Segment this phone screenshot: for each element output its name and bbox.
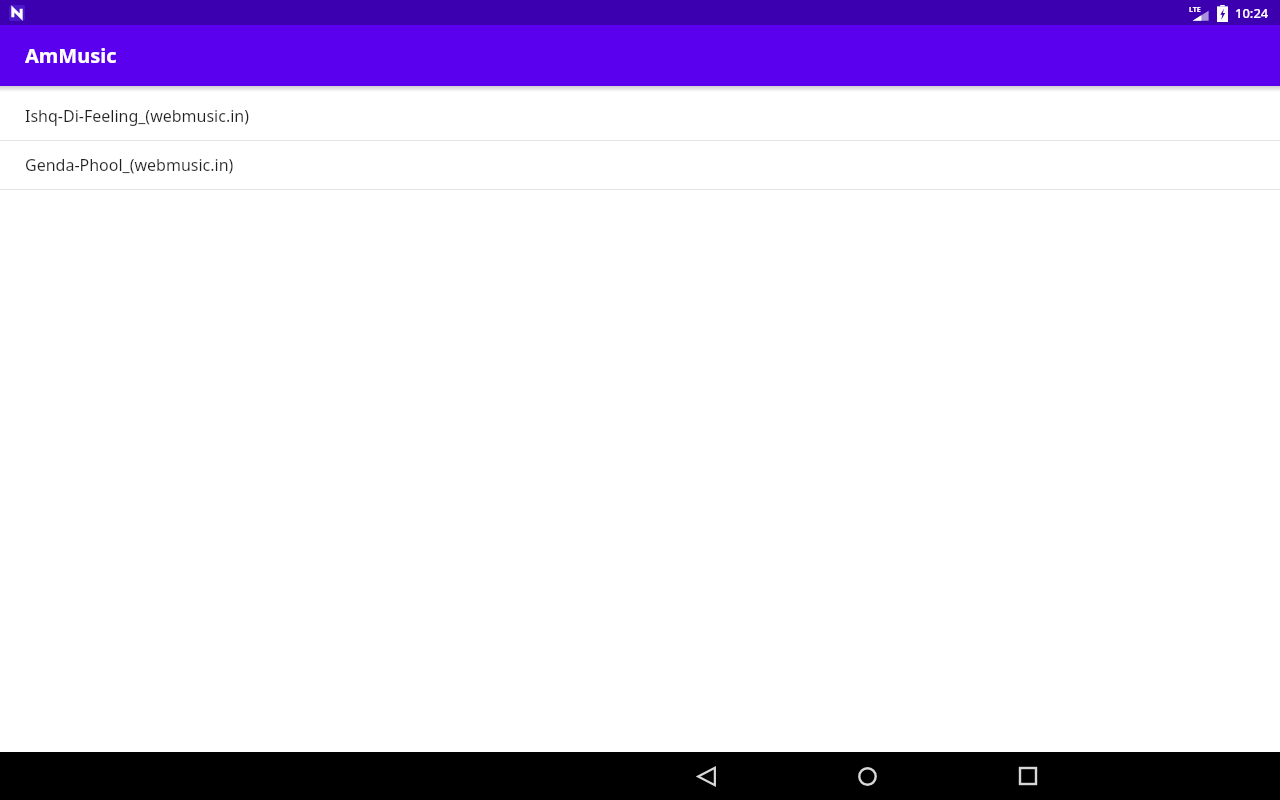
- staticText: Ishq-Di-Feeling_(webmusic.in): [25, 105, 250, 127]
- button[interactable]: Home: [843, 752, 891, 800]
- staticText: Genda-Phool_(webmusic.in): [25, 154, 234, 176]
- staticText: LTE: [1189, 5, 1201, 15]
- button[interactable]: Ishq-Di-Feeling_(webmusic.in): [0, 92, 1280, 141]
- button[interactable]: Back: [682, 752, 730, 800]
- staticText: AmMusic: [25, 42, 117, 69]
- button[interactable]: Recents: [1004, 752, 1052, 800]
- staticText: 10:24: [1235, 4, 1269, 22]
- button[interactable]: Genda-Phool_(webmusic.in): [0, 141, 1280, 190]
